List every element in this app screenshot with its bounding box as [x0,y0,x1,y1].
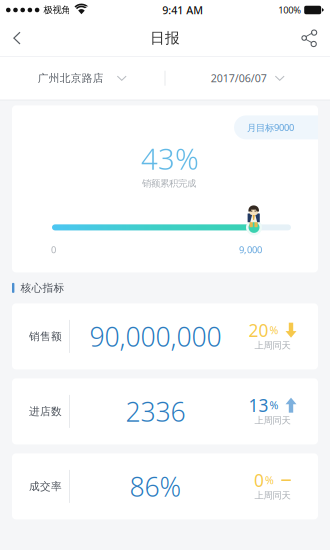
button[interactable]: 月目标9000 [234,115,330,139]
staticText: 20 [248,319,268,342]
staticText: 进店数 [29,405,62,418]
staticText: 90,000,000 [89,319,221,354]
staticText: % [269,323,278,337]
staticText: 广州北京路店 [38,72,104,85]
staticText: 0 [254,469,264,492]
staticText: 上周同天 [254,415,290,426]
button[interactable]: Back [0,21,35,54]
button[interactable]: Share [291,21,330,54]
staticText: 0 [51,243,56,256]
staticText: 极视角 [43,4,70,16]
staticText: 核心指标 [20,281,64,294]
staticText: 2336 [125,394,185,429]
staticText: % [265,473,274,487]
staticText: 9:41 AM [162,3,203,17]
button[interactable]: 销售额 [12,303,318,369]
staticText: 销额累积完成 [142,178,196,189]
staticText: 13 [248,394,268,417]
staticText: 上周同天 [254,340,290,351]
staticText: 上周同天 [254,490,290,501]
button[interactable]: 进店数 [12,378,318,444]
staticText: 日报 [150,29,180,47]
staticText: % [269,398,278,412]
staticText: 43% [141,139,199,178]
button[interactable]: 成交率 [12,453,318,519]
staticText: 成交率 [29,480,62,493]
staticText: 9,000 [239,243,262,256]
staticText: 86% [129,469,181,504]
button[interactable]: 广州北京路店 [0,57,164,100]
staticText: 销售额 [29,330,62,343]
staticText: 100% [278,4,301,16]
staticText: 月目标9000 [247,121,294,134]
button[interactable]: 2017/06/07 [165,57,330,100]
staticText: 2017/06/07 [211,71,267,85]
